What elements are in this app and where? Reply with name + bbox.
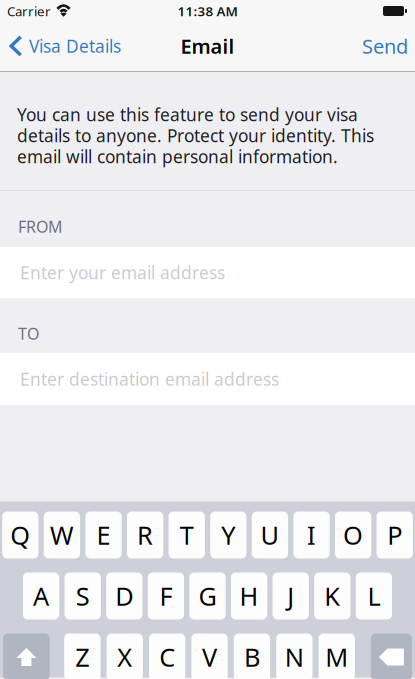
button[interactable]: R bbox=[127, 511, 163, 558]
staticText: FROM bbox=[18, 216, 63, 237]
staticText: Carrier bbox=[7, 2, 51, 20]
staticText: B bbox=[244, 640, 260, 674]
staticText: H bbox=[240, 579, 259, 613]
button[interactable]: Send bbox=[352, 25, 415, 67]
button[interactable]: B bbox=[234, 633, 270, 679]
button[interactable]: O bbox=[335, 511, 371, 558]
staticText: R bbox=[137, 518, 153, 552]
button[interactable]: U bbox=[252, 511, 288, 558]
staticText: F bbox=[159, 579, 172, 613]
button[interactable]: T bbox=[168, 511, 205, 558]
staticText: A bbox=[33, 579, 49, 613]
button[interactable]: K bbox=[314, 572, 350, 619]
button[interactable]: G bbox=[189, 572, 226, 619]
staticText: X bbox=[117, 640, 132, 674]
staticText: G bbox=[198, 579, 216, 613]
button[interactable]: I bbox=[293, 511, 330, 558]
button[interactable]: E bbox=[85, 511, 122, 558]
staticText: Enter destination email address bbox=[20, 367, 279, 390]
button[interactable]: A bbox=[23, 572, 59, 619]
staticText: U bbox=[260, 518, 279, 552]
button[interactable]: Q bbox=[2, 511, 38, 558]
staticText: Q bbox=[10, 518, 30, 552]
staticText: J bbox=[287, 579, 294, 613]
staticText: V bbox=[202, 640, 217, 674]
button[interactable]: X bbox=[107, 633, 143, 679]
button[interactable]: C bbox=[149, 633, 185, 679]
button[interactable]: Delete bbox=[371, 633, 412, 679]
staticText: Y bbox=[221, 518, 235, 552]
staticText: Email bbox=[180, 33, 234, 59]
button[interactable]: S bbox=[64, 572, 101, 619]
staticText: P bbox=[387, 518, 402, 552]
staticText: K bbox=[324, 579, 340, 613]
staticText: 11:38 AM bbox=[177, 2, 237, 20]
staticText: C bbox=[159, 640, 175, 674]
button[interactable]: W bbox=[44, 511, 80, 558]
button[interactable]: V bbox=[191, 633, 228, 679]
staticText: Visa Details bbox=[29, 34, 121, 57]
staticText: T bbox=[180, 518, 194, 552]
staticText: Enter your email address bbox=[20, 261, 225, 284]
button[interactable]: D bbox=[106, 572, 142, 619]
staticText: I bbox=[307, 518, 316, 552]
staticText: You can use this feature to send your vi… bbox=[17, 103, 374, 168]
button[interactable]: Enter your email address bbox=[0, 247, 415, 298]
button[interactable]: L bbox=[356, 572, 392, 619]
button[interactable]: Y bbox=[210, 511, 246, 558]
button[interactable]: Enter destination email address bbox=[0, 353, 415, 405]
button[interactable]: Z bbox=[64, 633, 100, 679]
staticText: E bbox=[96, 518, 110, 552]
staticText: W bbox=[50, 518, 74, 552]
staticText: D bbox=[115, 579, 133, 613]
button[interactable]: Shift bbox=[3, 633, 50, 679]
staticText: L bbox=[367, 579, 380, 613]
staticText: O bbox=[343, 518, 363, 552]
staticText: Z bbox=[75, 640, 89, 674]
button[interactable]: F bbox=[148, 572, 184, 619]
staticText: Send bbox=[362, 33, 408, 59]
button[interactable]: J bbox=[272, 572, 309, 619]
button[interactable]: P bbox=[376, 511, 413, 558]
staticText: TO bbox=[18, 323, 39, 344]
staticText: M bbox=[325, 640, 348, 674]
button[interactable]: Visa Details bbox=[0, 25, 127, 67]
button[interactable]: H bbox=[231, 572, 267, 619]
staticText: S bbox=[76, 579, 90, 613]
button[interactable]: M bbox=[319, 633, 355, 679]
button[interactable]: N bbox=[276, 633, 312, 679]
staticText: N bbox=[285, 640, 304, 674]
